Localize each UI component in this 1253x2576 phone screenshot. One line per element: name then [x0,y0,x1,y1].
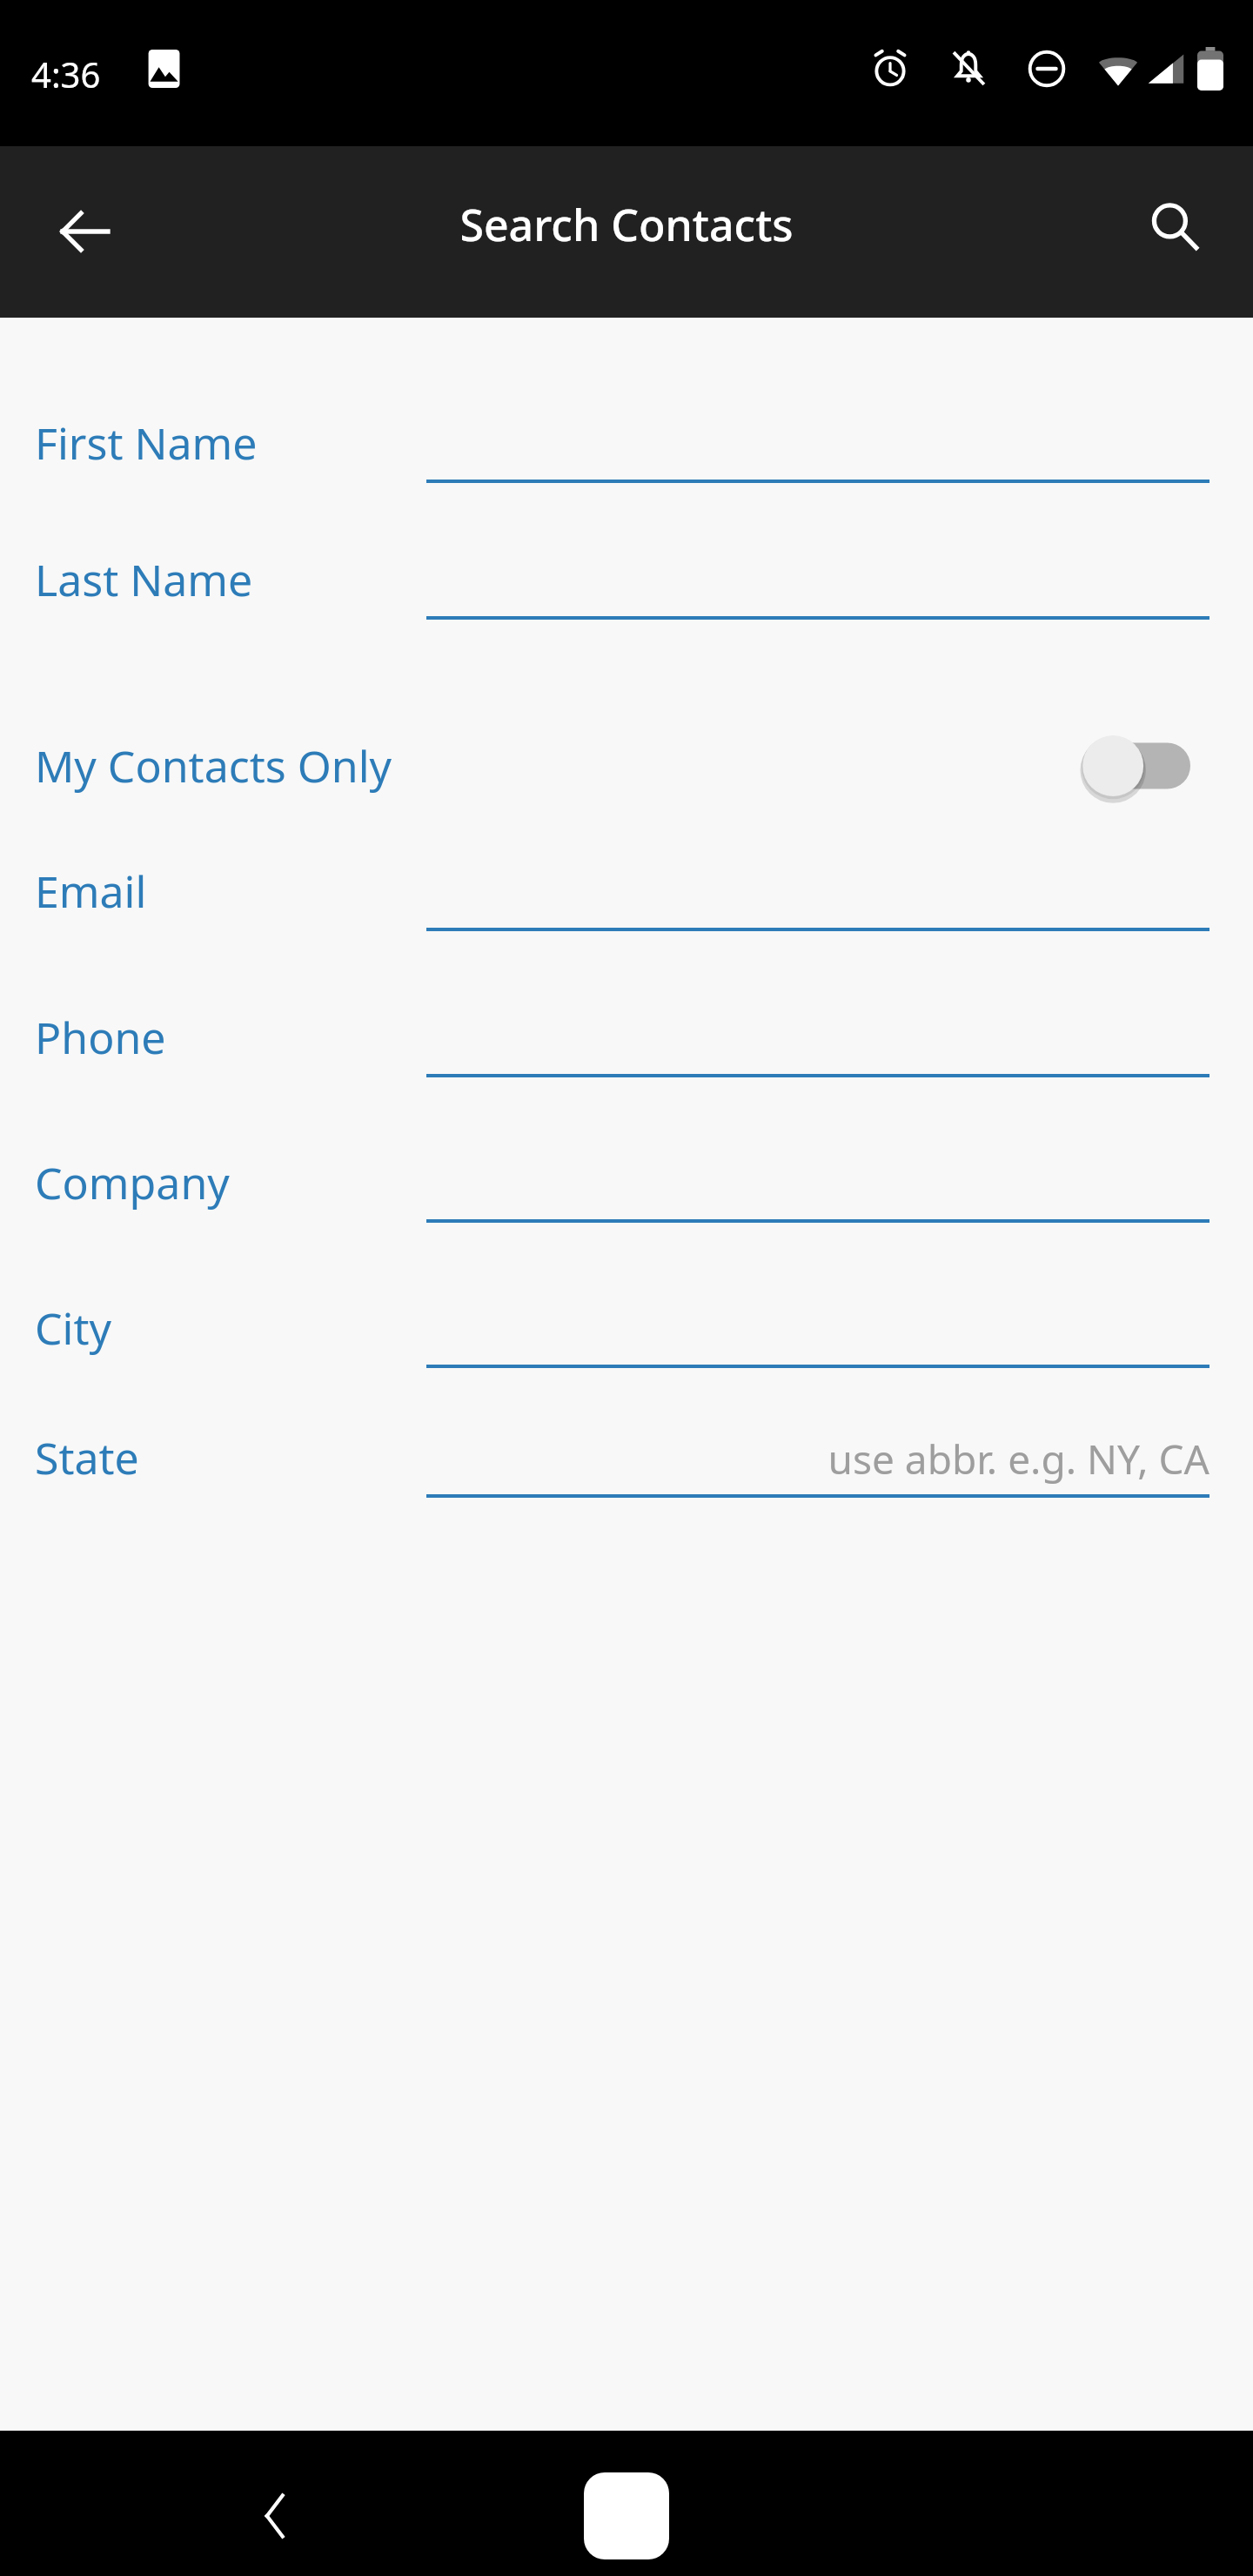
button[interactable]: First Name [0,387,1253,509]
button[interactable]: City [0,1272,1253,1394]
staticText: First Name [35,413,258,473]
staticText: Phone [35,1008,166,1067]
staticText: City [35,1298,112,1358]
staticText: Search Contacts [0,195,1253,254]
button[interactable]: Last Name [0,524,1253,646]
staticText: State [35,1428,139,1487]
button[interactable]: Back [216,2455,338,2576]
button[interactable]: State [0,1402,1253,1524]
button[interactable]: Back [26,172,144,291]
button[interactable]: My Contacts Only [0,705,1253,827]
button[interactable]: Company [0,1127,1253,1249]
staticText: Email [35,862,147,921]
button[interactable]: Phone [0,982,1253,1104]
staticText: Last Name [35,550,253,609]
staticText: Company [35,1153,230,1212]
staticText: 4:36 [31,50,101,97]
other: My Contacts Only toggle [1072,733,1211,799]
staticText: My Contacts Only [35,736,392,795]
staticText: use abbr. e.g. NY, CA [426,1432,1209,1486]
button[interactable]: Email [0,835,1253,957]
button[interactable]: Home [566,2462,687,2570]
button[interactable]: Search [1121,172,1229,280]
